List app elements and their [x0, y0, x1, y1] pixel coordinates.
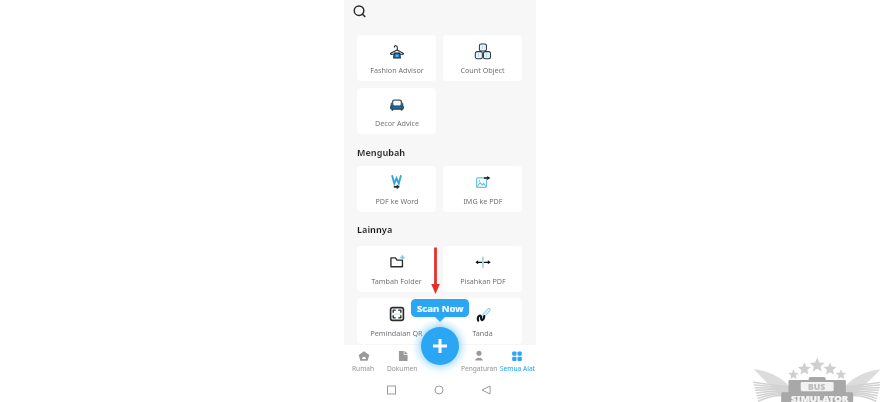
- button[interactable]: PDF ke Word: [357, 166, 436, 212]
- staticText: Lainnya: [357, 223, 393, 235]
- staticText: BUS: [808, 381, 826, 393]
- button[interactable]: Pemindaian QR: [357, 298, 436, 344]
- button[interactable]: Scan: [421, 327, 459, 365]
- button[interactable]: Count Object: [443, 35, 522, 81]
- staticText: Semua Alat: [500, 364, 535, 373]
- button[interactable]: Dokumen: [383, 345, 422, 378]
- button[interactable]: Semua Alat: [498, 345, 536, 378]
- staticText: Rumah: [352, 364, 375, 373]
- button[interactable]: Scan Now: [411, 299, 469, 317]
- staticText: Dokumen: [387, 364, 418, 373]
- staticText: Count Object: [460, 65, 505, 75]
- staticText: Fashion Advisor: [370, 65, 424, 75]
- button[interactable]: Tambah Folder: [357, 246, 436, 292]
- button[interactable]: Decor Advice: [357, 88, 436, 134]
- staticText: Pisahkan PDF: [460, 276, 506, 286]
- staticText: Scan Now: [417, 302, 464, 315]
- staticText: Pemindaian QR: [370, 328, 423, 338]
- button[interactable]: Tanda: [443, 298, 522, 344]
- button[interactable]: Rumah: [344, 345, 383, 378]
- staticText: Tambah Folder: [371, 276, 422, 286]
- button[interactable]: IMG ke PDF: [443, 166, 522, 212]
- button[interactable]: Fashion Advisor: [357, 35, 436, 81]
- staticText: Pengaturan: [461, 364, 498, 373]
- staticText: Decor Advice: [375, 118, 419, 128]
- staticText: Mengubah: [357, 146, 406, 158]
- button[interactable]: Pengaturan: [460, 345, 498, 378]
- staticText: SIMULATOR: [791, 392, 849, 402]
- staticText: Tanda: [472, 328, 493, 338]
- staticText: IMG ke PDF: [463, 196, 503, 206]
- button[interactable]: Search: [352, 4, 368, 20]
- staticText: PDF ke Word: [375, 196, 419, 206]
- button[interactable]: Pisahkan PDF: [443, 246, 522, 292]
